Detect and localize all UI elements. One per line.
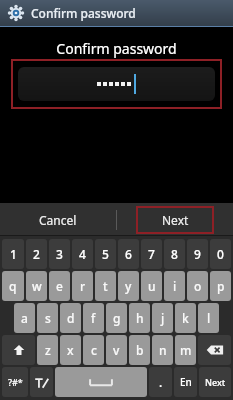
button[interactable]: k: [175, 303, 196, 333]
staticText: t: [103, 278, 108, 294]
staticText: Confirm password: [31, 5, 136, 21]
staticText: 8: [171, 246, 178, 262]
staticText: m: [180, 342, 192, 358]
button[interactable]: u: [141, 271, 162, 301]
button[interactable]: w: [26, 271, 47, 301]
button[interactable]: [18, 67, 215, 101]
staticText: b: [136, 342, 144, 358]
button[interactable]: v: [106, 335, 127, 365]
staticText: a: [21, 310, 28, 326]
staticText: c: [91, 342, 97, 358]
staticText: 0: [217, 246, 224, 262]
staticText: k: [182, 310, 189, 326]
staticText: w: [32, 278, 42, 294]
button[interactable]: p: [210, 271, 231, 301]
button[interactable]: o: [187, 271, 208, 301]
button[interactable]: i: [164, 271, 185, 301]
staticText: Confirm password: [56, 39, 177, 58]
button[interactable]: 7: [141, 239, 162, 269]
button[interactable]: a: [14, 303, 35, 333]
button[interactable]: Delete: [198, 335, 231, 365]
staticText: y: [125, 278, 132, 294]
button[interactable]: 0: [210, 239, 231, 269]
staticText: s: [45, 310, 51, 326]
button[interactable]: e: [49, 271, 70, 301]
button[interactable]: Handwriting: [30, 367, 53, 397]
staticText: o: [194, 278, 202, 294]
staticText: 9: [194, 246, 201, 262]
button[interactable]: 1: [2, 239, 24, 269]
staticText: Next: [162, 212, 189, 228]
button[interactable]: s: [37, 303, 58, 333]
staticText: x: [67, 342, 74, 358]
button[interactable]: h: [129, 303, 150, 333]
staticText: 3: [56, 246, 63, 262]
staticText: Next: [205, 376, 226, 388]
staticText: l: [207, 310, 211, 326]
button[interactable]: 6: [118, 239, 139, 269]
button[interactable]: m: [175, 335, 196, 365]
button[interactable]: z: [37, 335, 58, 365]
other: Settings: [8, 5, 24, 21]
button[interactable]: g: [106, 303, 127, 333]
staticText: d: [67, 310, 75, 326]
button[interactable]: Next: [199, 367, 231, 397]
button[interactable]: t: [95, 271, 116, 301]
button[interactable]: x: [60, 335, 81, 365]
button[interactable]: l: [198, 303, 219, 333]
staticText: Cancel: [39, 212, 77, 228]
button[interactable]: Shift: [2, 335, 35, 365]
button[interactable]: 9: [187, 239, 208, 269]
staticText: ?#*: [8, 376, 23, 388]
staticText: z: [45, 342, 51, 358]
button[interactable]: 5: [95, 239, 116, 269]
staticText: g: [113, 310, 121, 326]
staticText: h: [136, 310, 144, 326]
staticText: 4: [79, 246, 86, 262]
staticText: n: [159, 342, 167, 358]
staticText: e: [56, 278, 63, 294]
button[interactable]: y: [118, 271, 139, 301]
button[interactable]: q: [2, 271, 24, 301]
button[interactable]: r: [72, 271, 93, 301]
staticText: En: [180, 375, 192, 389]
staticText: .: [159, 374, 163, 390]
staticText: j: [161, 310, 165, 326]
button[interactable]: 4: [72, 239, 93, 269]
button[interactable]: .: [149, 367, 172, 397]
button[interactable]: 2: [26, 239, 47, 269]
staticText: 2: [33, 246, 40, 262]
staticText: q: [9, 278, 17, 294]
staticText: v: [113, 342, 120, 358]
staticText: p: [217, 278, 225, 294]
button[interactable]: Space: [55, 367, 147, 397]
staticText: f: [91, 310, 96, 326]
button[interactable]: 3: [49, 239, 70, 269]
button[interactable]: Cancel: [0, 203, 116, 236]
staticText: r: [80, 278, 86, 294]
button[interactable]: j: [152, 303, 173, 333]
button[interactable]: n: [152, 335, 173, 365]
staticText: u: [148, 278, 156, 294]
staticText: 5: [102, 246, 109, 262]
staticText: i: [173, 278, 177, 294]
staticText: 7: [148, 246, 155, 262]
button[interactable]: c: [83, 335, 104, 365]
button[interactable]: Next: [137, 207, 213, 233]
button[interactable]: 8: [164, 239, 185, 269]
button[interactable]: b: [129, 335, 150, 365]
staticText: 1: [10, 246, 17, 262]
button[interactable]: f: [83, 303, 104, 333]
button[interactable]: d: [60, 303, 81, 333]
staticText: 6: [125, 246, 132, 262]
button[interactable]: En: [174, 367, 197, 397]
button[interactable]: ?#*: [2, 367, 28, 397]
